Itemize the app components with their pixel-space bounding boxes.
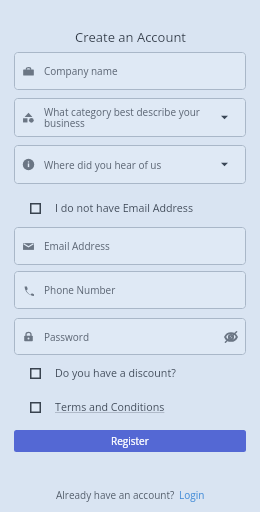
button[interactable]: Where did you hear of us (14, 145, 246, 184)
staticText: Email Address (44, 239, 110, 253)
button[interactable]: Password (14, 318, 246, 355)
staticText: Company name (44, 64, 118, 78)
staticText: Phone Number (44, 283, 116, 297)
staticText: Do you have a discount? (55, 366, 176, 381)
button[interactable]: Terms and Conditions (30, 399, 247, 416)
staticText: Register (111, 434, 149, 448)
staticText: Already have an account? (56, 488, 175, 502)
button[interactable]: Register (14, 430, 246, 452)
staticText: Where did you hear of us (44, 158, 162, 172)
staticText: What category best describe your busines… (44, 105, 224, 130)
button[interactable]: Phone Number (14, 271, 246, 309)
staticText: I do not have Email Address (55, 201, 194, 216)
staticText: Terms and Conditions (55, 400, 165, 415)
staticText: Login (179, 488, 205, 502)
staticText: Create an Account (75, 28, 186, 46)
button[interactable]: Email Address (14, 227, 246, 265)
button[interactable]: What category best describe your busines… (14, 98, 246, 137)
button[interactable]: Do you have a discount? (30, 365, 247, 382)
staticText: Password (44, 330, 90, 344)
other: Show password (224, 330, 238, 344)
button[interactable]: Company name (14, 52, 246, 90)
button[interactable]: I do not have Email Address (30, 200, 247, 217)
button[interactable]: Login (179, 488, 205, 502)
